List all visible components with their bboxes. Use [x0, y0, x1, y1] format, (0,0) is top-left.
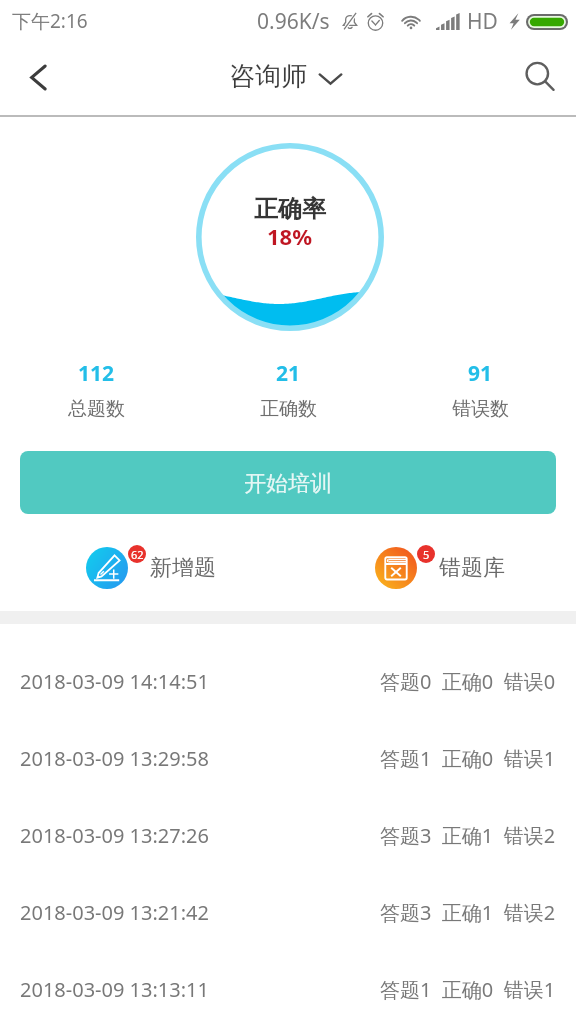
- button[interactable]: 21: [192, 359, 384, 421]
- staticText: 答题0 正确0 错误0: [380, 668, 556, 695]
- staticText: 18%: [267, 221, 313, 251]
- button[interactable]: 62: [86, 545, 216, 589]
- staticText: 咨询师: [229, 60, 307, 93]
- button[interactable]: 112: [0, 359, 192, 421]
- staticText: 开始培训: [244, 470, 332, 498]
- button[interactable]: 2018-03-09 13:27:26: [0, 797, 576, 874]
- staticText: 答题1 正确0 错误1: [380, 745, 556, 772]
- staticText: 错误数: [452, 397, 509, 421]
- staticText: 答题3 正确1 错误2: [380, 899, 556, 926]
- staticText: 0.96K/s: [257, 7, 330, 36]
- staticText: 2018-03-09 13:21:42: [20, 899, 209, 926]
- staticText: 总题数: [68, 397, 125, 421]
- staticText: 下午2:16: [12, 8, 88, 34]
- staticText: 62: [131, 547, 144, 562]
- staticText: 错题库: [439, 554, 505, 582]
- staticText: HD: [467, 7, 498, 36]
- staticText: 答题3 正确1 错误2: [380, 822, 556, 849]
- button[interactable]: 咨询师: [229, 60, 342, 93]
- staticText: 2018-03-09 13:29:58: [20, 745, 209, 772]
- staticText: 新增题: [150, 554, 216, 582]
- staticText: 5: [423, 547, 430, 562]
- button[interactable]: 2018-03-09 13:21:42: [0, 874, 576, 951]
- staticText: 答题1 正确0 错误1: [380, 976, 556, 1003]
- staticText: 91: [468, 359, 493, 388]
- button[interactable]: 2018-03-09 13:13:11: [0, 951, 576, 1024]
- button[interactable]: Search: [510, 47, 570, 107]
- staticText: 2018-03-09 13:13:11: [20, 976, 209, 1003]
- button[interactable]: 5: [375, 545, 505, 589]
- staticText: 21: [276, 359, 301, 388]
- button[interactable]: Back: [8, 47, 68, 107]
- staticText: 2018-03-09 14:14:51: [20, 668, 209, 695]
- button[interactable]: 2018-03-09 14:14:51: [0, 643, 576, 720]
- button[interactable]: 91: [384, 359, 576, 421]
- staticText: 正确数: [260, 397, 317, 421]
- button[interactable]: 2018-03-09 13:29:58: [0, 720, 576, 797]
- staticText: 正确率: [254, 194, 326, 224]
- staticText: 2018-03-09 13:27:26: [20, 822, 209, 849]
- staticText: 112: [78, 359, 115, 388]
- button[interactable]: 开始培训: [20, 451, 556, 514]
